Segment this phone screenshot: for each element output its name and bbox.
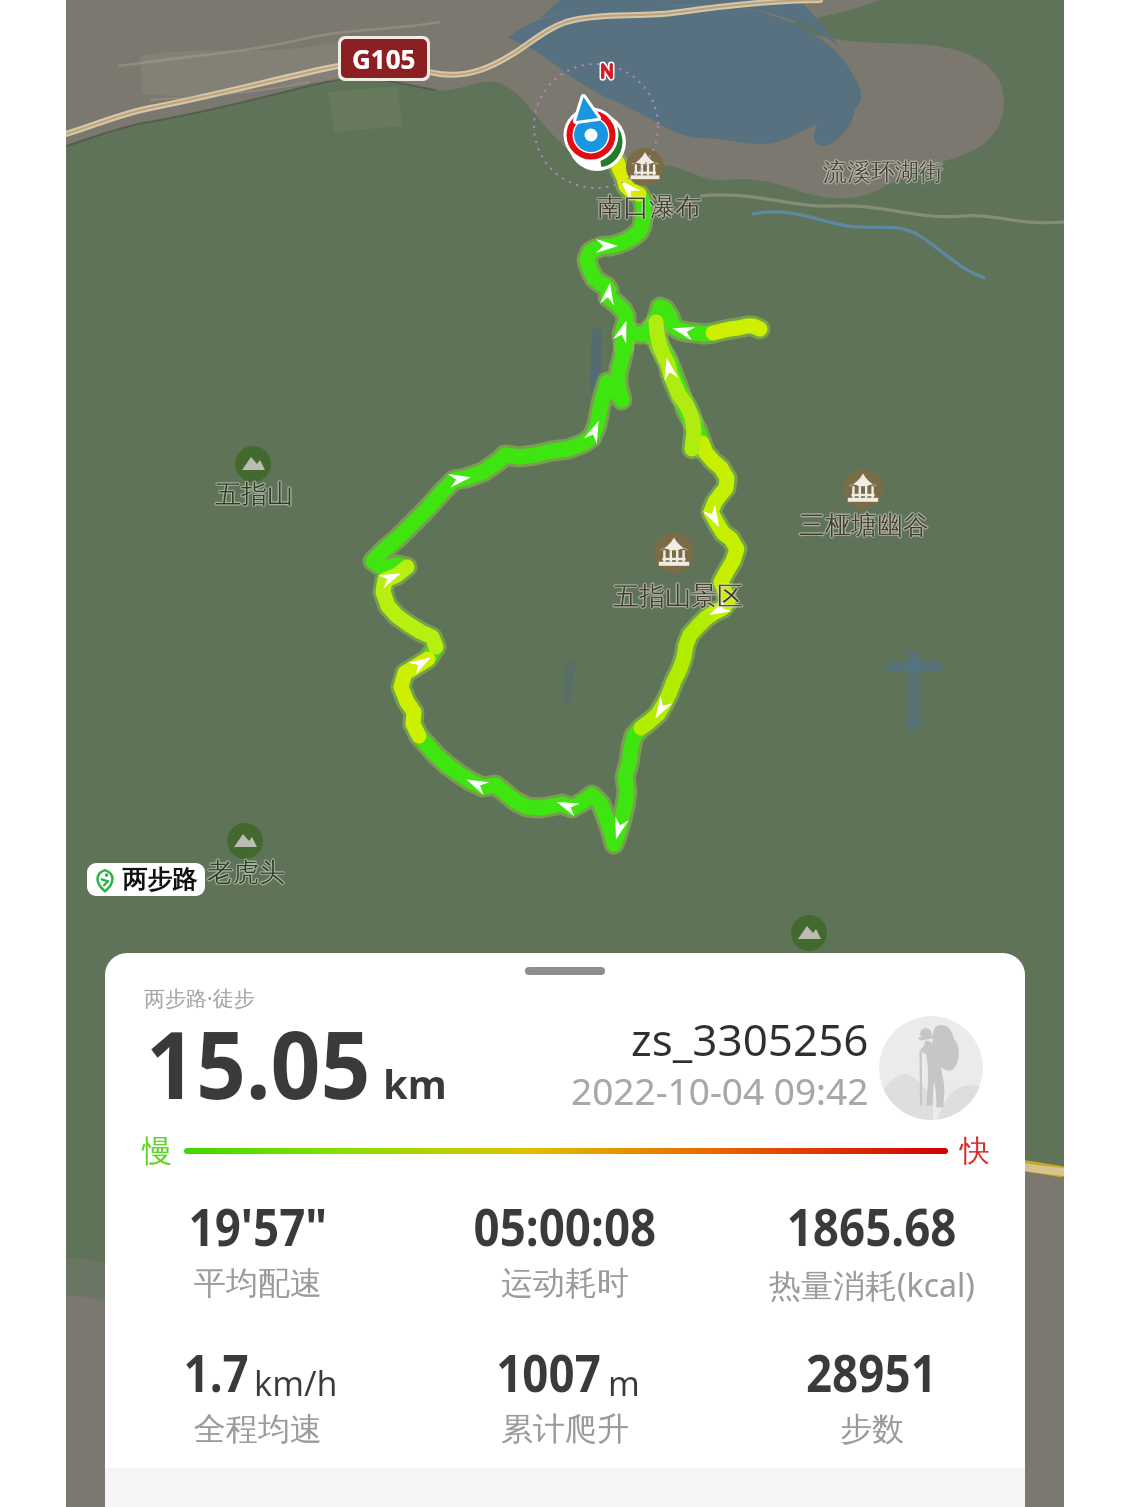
staticText: 三桠塘幽谷 (799, 510, 929, 543)
staticText: km/h (254, 1360, 338, 1406)
staticText: m (608, 1360, 640, 1406)
staticText: 流溪环湖街 (824, 157, 944, 187)
staticText: 热量消耗(kcal) (769, 1263, 975, 1307)
staticText: 五指山 (216, 478, 294, 511)
staticText: 流溪环湖街 (823, 157, 943, 187)
staticText: 老虎头 (208, 856, 286, 889)
staticText: 05:00:08 (473, 1190, 656, 1261)
staticText: 老虎头 (207, 857, 285, 890)
staticText: 三桠塘幽谷 (798, 509, 928, 542)
staticText: 15.05 (146, 999, 371, 1127)
staticText: 流溪环湖街 (822, 157, 942, 187)
staticText: 全程均速 (194, 1409, 322, 1449)
staticText: 步数 (840, 1409, 904, 1449)
staticText: 累计爬升 (501, 1409, 629, 1449)
staticText: 1007 (496, 1336, 601, 1407)
staticText: 1.7 (183, 1336, 249, 1407)
staticText: 五指山 (215, 479, 293, 512)
staticText: 老虎头 (207, 855, 285, 888)
staticText: 平均配速 (194, 1263, 322, 1303)
button[interactable]: G105 (352, 41, 416, 76)
staticText: 五指山 (215, 477, 293, 510)
staticText: 五指山 (214, 478, 292, 511)
staticText: 五指山景区 (614, 580, 744, 613)
staticText: 南口瀑布 (597, 192, 701, 225)
staticText: 老虎头 (206, 856, 284, 889)
staticText: 两步路·徒步 (144, 984, 255, 1013)
staticText: 五指山景区 (613, 581, 743, 614)
staticText: 快 (960, 1132, 990, 1170)
staticText: 三桠塘幽谷 (799, 509, 929, 542)
staticText: 流溪环湖街 (823, 158, 943, 188)
staticText: 五指山景区 (612, 580, 742, 613)
staticText: 28951 (806, 1336, 937, 1407)
staticText: 老虎头 (207, 856, 285, 889)
staticText: 1865.68 (787, 1190, 957, 1261)
staticText: 两步路 (122, 864, 197, 895)
staticText: km (383, 1056, 447, 1110)
staticText: G105 (352, 41, 416, 76)
button[interactable]: 两步路 (92, 863, 197, 896)
staticText: 南口瀑布 (597, 191, 701, 224)
staticText: 五指山景区 (613, 580, 743, 613)
staticText: 2022-10-04 09:42 (571, 1065, 869, 1115)
staticText: 南口瀑布 (598, 191, 702, 224)
staticText: 南口瀑布 (597, 190, 701, 223)
staticText: 南口瀑布 (596, 191, 700, 224)
staticText: 流溪环湖街 (823, 156, 943, 186)
staticText: 五指山 (215, 478, 293, 511)
staticText: 运动耗时 (501, 1263, 629, 1303)
staticText: 三桠塘幽谷 (800, 509, 930, 542)
staticText: 三桠塘幽谷 (799, 508, 929, 541)
staticText: 五指山景区 (613, 579, 743, 612)
staticText: 慢 (142, 1132, 172, 1170)
staticText: zs_3305256 (631, 1009, 869, 1069)
staticText: 19'57" (188, 1190, 327, 1261)
